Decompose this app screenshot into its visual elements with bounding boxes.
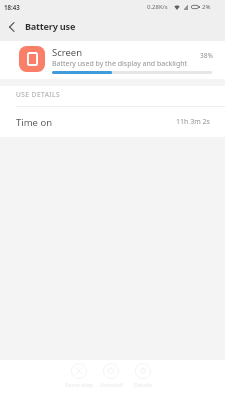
staticText: 2% [202,3,211,11]
staticText: Battery used by the display and backligh… [52,59,188,69]
button[interactable]: Uninstall [95,359,127,389]
button[interactable]: Details [127,359,159,389]
staticText: Time on [16,116,53,129]
staticText: USE DETAILS [16,90,60,99]
button[interactable]: Force stop [63,359,95,389]
staticText: Screen [52,46,83,59]
staticText: Uninstall [99,381,123,389]
button[interactable]: Time on [0,107,225,137]
staticText: Battery use [25,20,76,33]
staticText: Details [134,381,152,389]
staticText: 18:43 [4,3,20,11]
button[interactable]: Back [0,15,24,39]
button[interactable]: Screen [0,41,225,79]
staticText: Force stop [65,381,93,389]
staticText: 0.28K/s [147,3,168,11]
staticText: 11h 3m 2s [176,117,210,127]
staticText: 38% [200,51,213,60]
